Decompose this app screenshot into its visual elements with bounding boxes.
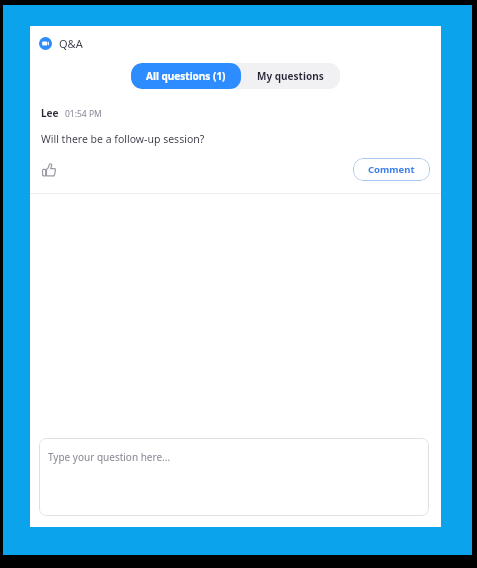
staticText: All questions (1) xyxy=(146,69,226,83)
staticText: Type your question here... xyxy=(48,450,171,464)
button[interactable]: My questions xyxy=(241,63,340,89)
staticText: Comment xyxy=(368,163,415,176)
button[interactable]: Upvote question xyxy=(40,161,58,179)
button[interactable]: Comment xyxy=(353,158,430,181)
staticText: My questions xyxy=(257,69,324,83)
button[interactable]: All questions (1) xyxy=(131,63,241,89)
button[interactable]: Type your question here... xyxy=(39,438,429,516)
staticText: 01:54 PM xyxy=(65,108,102,120)
staticText: Q&A xyxy=(59,36,83,51)
staticText: Lee xyxy=(41,106,59,120)
staticText: Will there be a follow-up session? xyxy=(41,132,205,146)
